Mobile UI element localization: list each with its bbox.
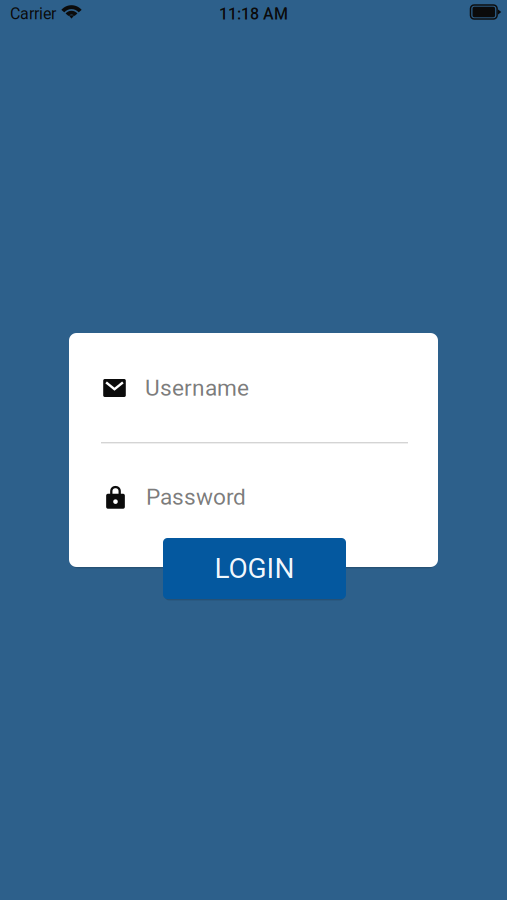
- button[interactable]: LOGIN: [163, 538, 346, 599]
- staticText: 11:18 AM: [219, 5, 288, 23]
- staticText: LOGIN: [214, 552, 294, 585]
- staticText: Username: [145, 375, 249, 401]
- staticText: Password: [146, 484, 246, 510]
- staticText: Carrier: [10, 4, 56, 23]
- button[interactable]: Username: [103, 366, 408, 410]
- button[interactable]: Password: [104, 475, 409, 519]
